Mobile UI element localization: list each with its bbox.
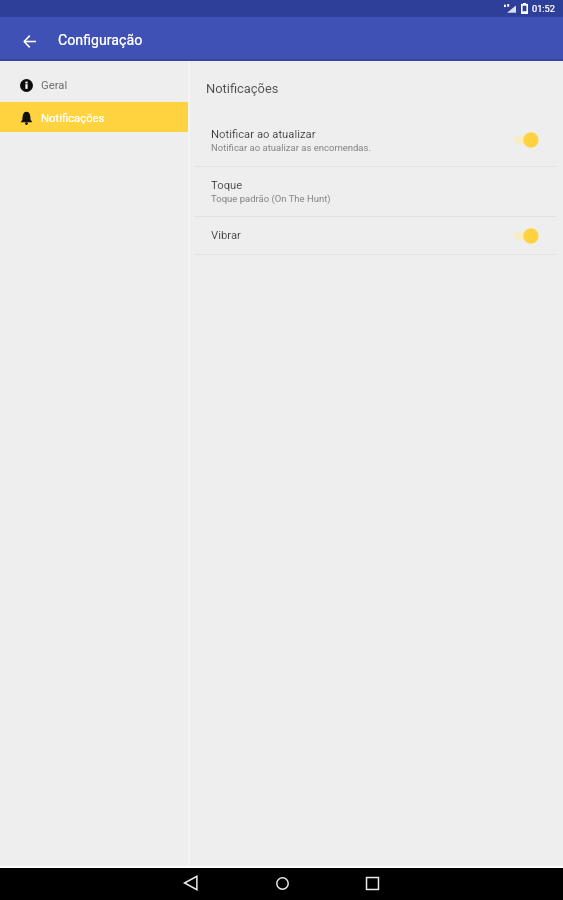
button[interactable]: Back <box>169 867 213 899</box>
button[interactable]: Back <box>9 21 49 61</box>
button[interactable]: Home <box>260 867 304 899</box>
staticText: 01:52 <box>532 3 555 14</box>
button[interactable]: Recents <box>350 867 394 899</box>
staticText: Notificações <box>41 112 105 125</box>
staticText: Toque <box>211 179 243 192</box>
staticText: Toque padrão (On The Hunt) <box>211 193 331 204</box>
button[interactable]: Toggle <box>512 130 539 150</box>
button[interactable]: Notificar ao atualizar <box>190 114 563 166</box>
staticText: Notificar ao atualizar <box>211 128 316 141</box>
staticText: Geral <box>41 79 68 92</box>
staticText: Notificações <box>206 81 279 96</box>
staticText: Notificar ao atualizar as encomendas. <box>211 142 371 153</box>
button[interactable]: Vibrar <box>190 217 563 254</box>
button[interactable]: Notificações <box>0 102 188 132</box>
button[interactable]: Geral <box>0 69 188 99</box>
button[interactable]: Toque <box>190 167 563 216</box>
button[interactable]: Toggle <box>512 226 539 246</box>
staticText: Configuração <box>58 32 143 49</box>
staticText: Vibrar <box>211 229 241 242</box>
